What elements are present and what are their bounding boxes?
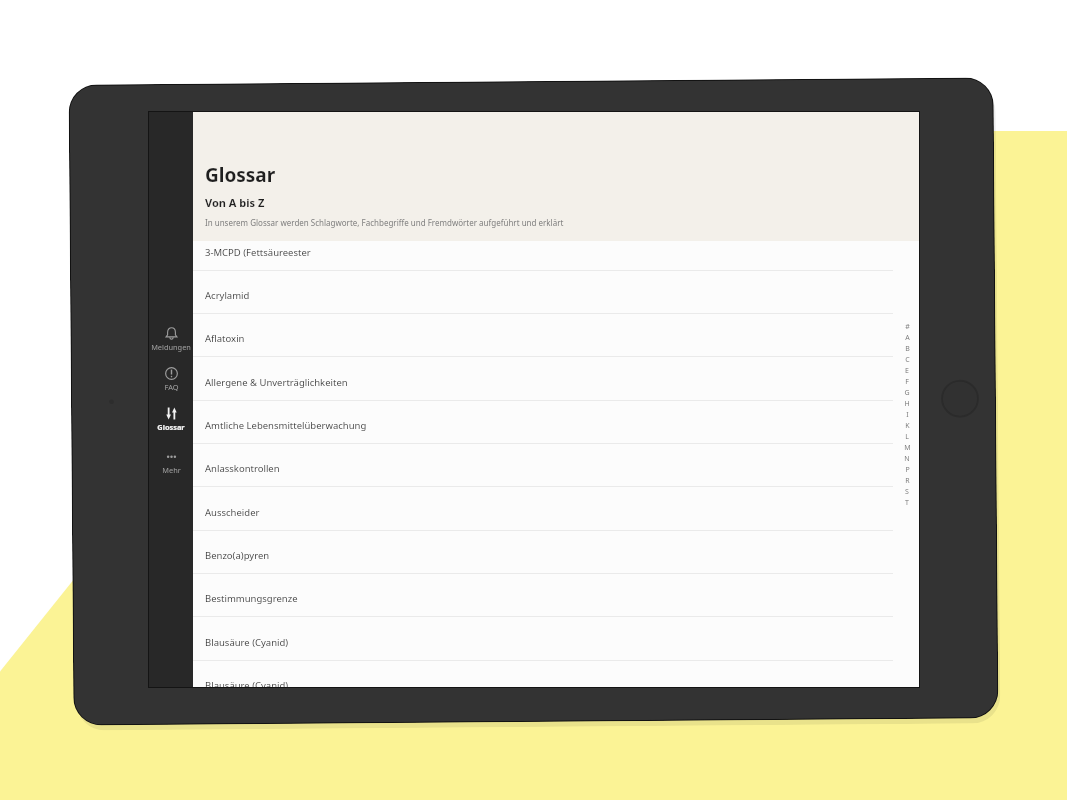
staticText: E bbox=[905, 366, 909, 376]
staticText: Glossar bbox=[205, 162, 276, 188]
button[interactable]: Benzo(a)pyren bbox=[193, 531, 919, 574]
staticText: Acrylamid bbox=[205, 289, 250, 302]
staticText: In unserem Glossar werden Schlagworte, F… bbox=[205, 217, 564, 228]
staticText: B bbox=[905, 344, 910, 354]
staticText: F bbox=[905, 377, 909, 387]
other: Mehr bbox=[165, 450, 178, 463]
staticText: FAQ bbox=[164, 382, 179, 392]
button[interactable]: Ausscheider bbox=[193, 488, 919, 531]
staticText: Benzo(a)pyren bbox=[205, 549, 270, 562]
staticText: Allergene & Unverträglichkeiten bbox=[205, 376, 348, 389]
button[interactable]: Anlasskontrollen bbox=[193, 444, 919, 487]
button[interactable]: FAQ bbox=[149, 367, 193, 392]
staticText: 3-MCPD (Fettsäureester bbox=[205, 246, 311, 259]
staticText: Bestimmungsgrenze bbox=[205, 592, 298, 605]
staticText: Mehr bbox=[162, 465, 181, 475]
button[interactable]: Blausäure (Cyanid) bbox=[193, 661, 919, 687]
staticText: Ausscheider bbox=[205, 506, 260, 519]
staticText: S bbox=[905, 487, 909, 497]
button[interactable]: Amtliche Lebensmittelüberwachung bbox=[193, 401, 919, 444]
staticText: # bbox=[905, 322, 910, 332]
other: FAQ bbox=[165, 367, 178, 380]
staticText: T bbox=[905, 498, 909, 508]
staticText: Blausäure (Cyanid) bbox=[205, 636, 289, 649]
staticText: A bbox=[905, 333, 910, 343]
staticText: Meldungen bbox=[151, 342, 191, 352]
staticText: R bbox=[905, 476, 910, 486]
staticText: Von A bis Z bbox=[205, 195, 265, 210]
staticText: Anlasskontrollen bbox=[205, 462, 280, 475]
staticText: G bbox=[904, 388, 910, 398]
other: Glossar bbox=[165, 407, 178, 420]
staticText: Amtliche Lebensmittelüberwachung bbox=[205, 419, 367, 432]
staticText: Glossar bbox=[157, 422, 185, 432]
staticText: H bbox=[904, 399, 910, 409]
button[interactable]: Blausäure (Cyanid) bbox=[193, 618, 919, 661]
other: Meldungen bbox=[165, 327, 178, 340]
staticText: L bbox=[905, 432, 909, 442]
button[interactable]: Bestimmungsgrenze bbox=[193, 574, 919, 617]
staticText: I bbox=[906, 410, 909, 420]
staticText: P bbox=[905, 465, 910, 475]
button[interactable]: Meldungen bbox=[149, 327, 193, 352]
button[interactable]: Glossar bbox=[149, 407, 193, 432]
button[interactable]: 3-MCPD (Fettsäureester bbox=[193, 228, 919, 271]
staticText: M bbox=[904, 443, 911, 453]
staticText: N bbox=[904, 454, 910, 464]
staticText: Aflatoxin bbox=[205, 332, 245, 345]
staticText: C bbox=[905, 355, 910, 365]
staticText: Blausäure (Cyanid) bbox=[205, 679, 289, 687]
button[interactable]: Aflatoxin bbox=[193, 314, 919, 357]
button[interactable]: Mehr bbox=[149, 450, 193, 475]
button[interactable]: Acrylamid bbox=[193, 271, 919, 314]
button[interactable]: Allergene & Unverträglichkeiten bbox=[193, 358, 919, 401]
staticText: K bbox=[905, 421, 910, 431]
